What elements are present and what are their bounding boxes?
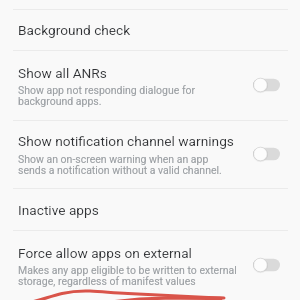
- staticText: Show app not responding dialogue for bac…: [18, 84, 196, 108]
- staticText: Show all ANRs: [18, 65, 107, 81]
- staticText: Background check: [18, 22, 131, 38]
- staticText: Show notification channel warnings: [18, 133, 234, 149]
- staticText: Inactive apps: [18, 202, 99, 218]
- staticText: Force allow apps on external: [18, 245, 192, 261]
- button[interactable]: Show all ANRs: [246, 68, 287, 102]
- staticText: Show an on-screen warning when an app se…: [18, 153, 222, 177]
- staticText: Makes any app eligible to be written to …: [18, 264, 237, 288]
- button[interactable]: Force allow apps on external: [246, 248, 287, 282]
- button[interactable]: [0, 121, 300, 188]
- button[interactable]: [0, 10, 300, 50]
- button[interactable]: [0, 231, 300, 300]
- button[interactable]: [0, 51, 300, 120]
- button[interactable]: [0, 189, 300, 230]
- button[interactable]: Show notification channel warnings: [246, 137, 287, 171]
